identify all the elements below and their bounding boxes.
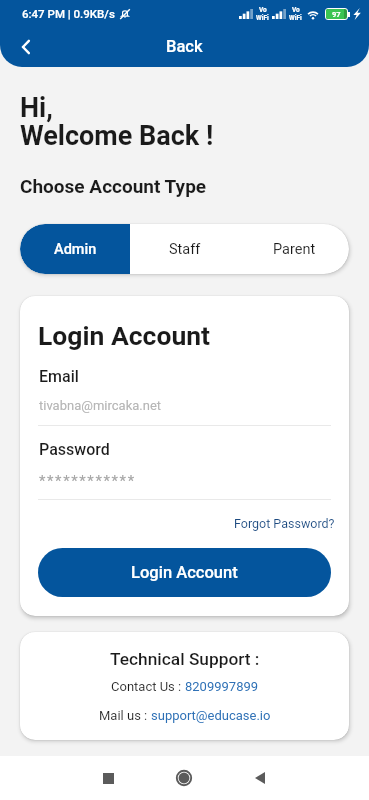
staticText: tivabna@mircaka.net xyxy=(39,398,162,413)
staticText: Technical Support : xyxy=(110,649,260,669)
staticText: ************ xyxy=(39,472,136,490)
button[interactable]: Recent apps xyxy=(85,756,131,800)
button[interactable]: Parent xyxy=(239,224,349,274)
button[interactable]: Back xyxy=(9,30,43,64)
button[interactable]: support@educase.io xyxy=(151,708,271,723)
staticText: Parent xyxy=(273,241,316,258)
staticText: WiFi xyxy=(256,14,269,22)
staticText: Email xyxy=(39,367,79,386)
staticText: Welcome Back ! xyxy=(20,120,214,152)
staticText: Contact Us : xyxy=(111,679,185,694)
button[interactable]: 8209997899 xyxy=(185,679,259,694)
staticText: Admin xyxy=(54,241,97,258)
button[interactable]: Forgot Password? xyxy=(234,516,335,531)
staticText: Vo xyxy=(259,6,267,14)
button[interactable]: Staff xyxy=(130,224,239,274)
staticText: WiFi xyxy=(289,14,302,22)
staticText: Hi, xyxy=(20,92,53,124)
staticText: Mail us : xyxy=(99,708,151,723)
staticText: Password xyxy=(39,440,110,459)
staticText: 97 xyxy=(332,10,341,19)
button[interactable]: Back xyxy=(237,756,283,800)
staticText: Login Account xyxy=(131,563,238,582)
button[interactable]: Home xyxy=(161,756,207,800)
staticText: Choose Account Type xyxy=(20,175,207,197)
staticText: Back xyxy=(166,37,203,56)
button[interactable]: Login Account xyxy=(38,548,331,597)
staticText: Login Account xyxy=(38,320,211,351)
staticText: 6:47 PM | 0.9KB/s xyxy=(22,7,115,20)
staticText: Vo xyxy=(292,6,300,14)
staticText: Staff xyxy=(169,241,201,258)
button[interactable]: Admin xyxy=(20,224,130,274)
